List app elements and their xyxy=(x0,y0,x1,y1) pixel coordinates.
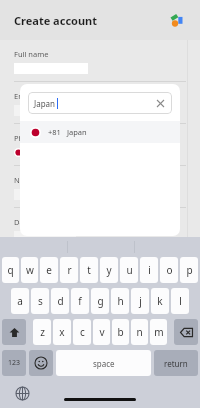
button[interactable]: t xyxy=(80,257,98,283)
staticText: e xyxy=(46,263,52,277)
button[interactable]: Change keyboard xyxy=(14,385,30,401)
staticText: p xyxy=(186,263,193,277)
button[interactable]: Shift xyxy=(2,319,26,345)
button[interactable]: z xyxy=(33,319,51,345)
button[interactable]: g xyxy=(91,288,109,314)
staticText: Japan xyxy=(67,127,87,137)
staticText: m xyxy=(154,325,164,339)
staticText: s xyxy=(38,294,43,308)
button[interactable]: Japan xyxy=(28,92,172,114)
staticText: +81 xyxy=(48,127,61,137)
button[interactable]: p xyxy=(180,257,198,283)
staticText: b xyxy=(117,325,124,339)
button[interactable]: u xyxy=(120,257,138,283)
staticText: return xyxy=(164,358,188,369)
button[interactable]: Emoji xyxy=(29,350,53,376)
button[interactable]: c xyxy=(73,319,91,345)
staticText: j xyxy=(139,294,142,308)
button[interactable]: 123 xyxy=(2,350,26,376)
button[interactable]: v xyxy=(93,319,110,345)
staticText: Date of birth xyxy=(14,217,59,227)
staticText: y xyxy=(106,263,112,277)
button[interactable]: App logo xyxy=(166,10,186,30)
button[interactable]: a xyxy=(11,288,29,314)
button[interactable]: b xyxy=(112,319,129,345)
button[interactable]: d xyxy=(51,288,69,314)
staticText: Full name xyxy=(14,49,49,59)
button[interactable]: x xyxy=(53,319,71,345)
staticText: i xyxy=(148,263,151,277)
button[interactable]: k xyxy=(151,288,169,314)
staticText: Japan xyxy=(34,98,56,109)
button[interactable]: l xyxy=(171,288,189,314)
staticText: t xyxy=(87,263,91,277)
staticText: o xyxy=(166,263,173,277)
staticText: c xyxy=(80,325,85,339)
staticText: z xyxy=(40,325,45,339)
staticText: w xyxy=(26,263,34,277)
staticText: 123 xyxy=(8,358,21,368)
button[interactable]: q xyxy=(2,257,19,283)
staticText: a xyxy=(17,294,23,308)
staticText: Email address xyxy=(14,91,64,101)
staticText: v xyxy=(99,325,105,339)
staticText: f xyxy=(78,294,82,308)
staticText: n xyxy=(136,325,143,339)
button[interactable]: h xyxy=(111,288,129,314)
button[interactable]: j xyxy=(131,288,149,314)
staticText: Phone number xyxy=(14,133,67,143)
staticText: l xyxy=(179,294,182,308)
staticText: x xyxy=(59,325,65,339)
staticText: Nickname xyxy=(14,175,50,185)
button[interactable]: +81 xyxy=(20,121,180,143)
staticText: h xyxy=(117,294,124,308)
button[interactable]: w xyxy=(21,257,38,283)
button[interactable]: r xyxy=(60,257,78,283)
staticText: r xyxy=(67,263,72,277)
staticText: g xyxy=(97,294,104,308)
button[interactable]: e xyxy=(40,257,58,283)
button[interactable]: s xyxy=(31,288,49,314)
button[interactable]: space xyxy=(56,350,151,376)
button[interactable]: i xyxy=(140,257,158,283)
staticText: q xyxy=(7,263,14,277)
button[interactable]: Clear search xyxy=(155,98,166,109)
button[interactable]: return xyxy=(154,350,198,376)
button[interactable]: f xyxy=(71,288,89,314)
staticText: space xyxy=(93,358,115,369)
button[interactable]: n xyxy=(131,319,148,345)
button[interactable]: Backspace xyxy=(174,319,198,345)
staticText: Create account xyxy=(14,13,98,28)
staticText: k xyxy=(157,294,163,308)
button[interactable]: m xyxy=(150,319,167,345)
button[interactable]: o xyxy=(160,257,178,283)
staticText: u xyxy=(126,263,133,277)
button[interactable]: y xyxy=(100,257,118,283)
staticText: d xyxy=(57,294,64,308)
